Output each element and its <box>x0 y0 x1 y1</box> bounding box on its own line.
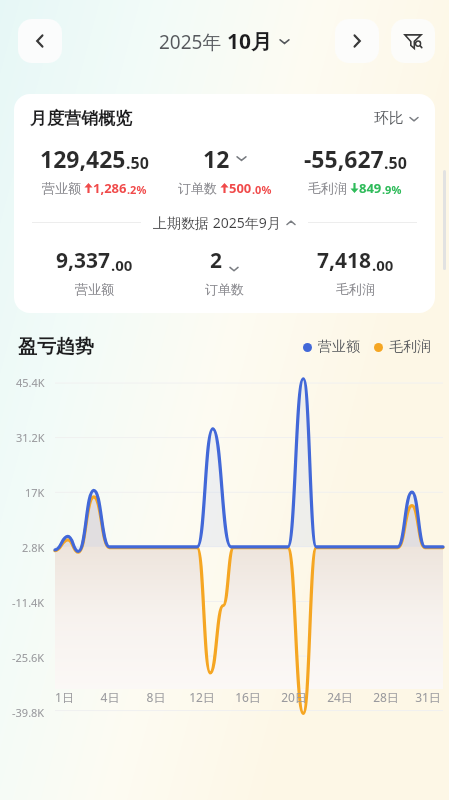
button[interactable]: 12 <box>166 143 283 197</box>
staticText: 月度营销概览 <box>30 108 132 129</box>
staticText: 20日 <box>271 689 317 705</box>
staticText: -25.6K <box>12 650 45 665</box>
staticText: 上期数据 2025年9月 <box>153 213 281 232</box>
button[interactable]: 营业额 <box>303 338 360 356</box>
button[interactable]: -55,627 <box>283 143 427 197</box>
staticText: 毛利润 <box>336 281 375 297</box>
button[interactable]: Next month <box>335 19 379 63</box>
button[interactable]: 7,418 <box>283 246 427 297</box>
staticText: 24日 <box>317 689 363 705</box>
staticText: .50 <box>126 152 149 174</box>
button[interactable]: 2025年 <box>159 27 290 56</box>
button[interactable]: 上期数据 2025年9月 <box>32 213 417 232</box>
staticText: 31日 <box>409 689 447 705</box>
staticText: -39.8K <box>12 705 45 719</box>
button[interactable]: Filter search <box>391 19 435 63</box>
staticText: 849 <box>359 179 382 197</box>
staticText: 盈亏趋势 <box>18 335 94 359</box>
button[interactable]: 毛利润 <box>374 338 431 356</box>
staticText: 营业额 <box>75 281 114 297</box>
staticText: 8日 <box>133 689 179 705</box>
button[interactable]: 129,425 <box>22 143 166 197</box>
staticText: 订单数 <box>205 281 244 297</box>
staticText: 28日 <box>363 689 409 705</box>
staticText: 4日 <box>87 689 133 705</box>
staticText: 10月 <box>227 27 273 56</box>
staticText: 1日 <box>42 689 87 705</box>
staticText: .0% <box>252 182 272 197</box>
staticText: .00 <box>111 255 133 275</box>
staticText: 12 <box>203 143 230 174</box>
staticText: 31.2K <box>16 430 45 445</box>
staticText: 7,418 <box>317 246 372 275</box>
staticText: 订单数 <box>178 180 217 196</box>
staticText: 营业额 <box>42 180 81 196</box>
staticText: .2% <box>127 182 147 197</box>
staticText: .9% <box>382 182 402 197</box>
staticText: 毛利润 <box>308 180 347 196</box>
staticText: 营业额 <box>318 338 360 356</box>
staticText: 9,337 <box>56 246 111 275</box>
staticText: .00 <box>372 255 394 275</box>
staticText: 2.8K <box>22 540 45 555</box>
button[interactable]: Previous month <box>18 19 62 63</box>
staticText: -55,627 <box>304 143 384 174</box>
staticText: 1,286 <box>93 179 127 197</box>
staticText: 45.4K <box>16 375 45 390</box>
staticText: 129,425 <box>40 143 126 174</box>
button[interactable]: 2 <box>166 246 283 297</box>
staticText: 环比 <box>374 109 404 128</box>
button[interactable]: 9,337 <box>22 246 166 297</box>
staticText: 毛利润 <box>389 338 431 356</box>
staticText: 16日 <box>225 689 271 705</box>
staticText: .50 <box>384 152 407 174</box>
staticText: 12日 <box>179 689 225 705</box>
staticText: 17K <box>25 485 45 500</box>
button[interactable]: 环比 <box>374 109 419 128</box>
staticText: 2 <box>210 246 223 275</box>
staticText: 500 <box>229 179 252 197</box>
staticText: -11.4K <box>12 595 45 610</box>
staticText: 2025年 <box>159 29 227 55</box>
